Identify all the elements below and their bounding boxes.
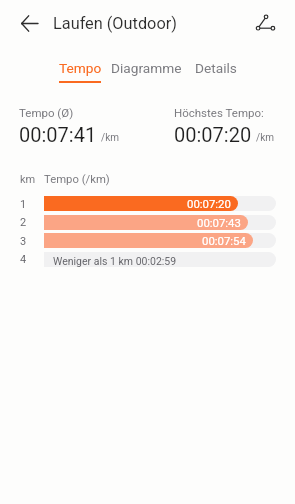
button[interactable]: 00:07:20 <box>44 196 276 211</box>
staticText: km <box>20 173 36 186</box>
button[interactable]: Back <box>16 10 42 36</box>
staticText: /km <box>101 132 119 144</box>
staticText: 4 <box>20 253 27 266</box>
staticText: Weniger als 1 km 00:02:59 <box>53 255 177 267</box>
staticText: 00:07:20 <box>187 197 231 210</box>
staticText: Tempo (Ø) <box>19 106 74 119</box>
staticText: /km <box>256 132 274 144</box>
button[interactable]: Details <box>188 53 244 83</box>
staticText: 00:07:20 <box>174 123 252 146</box>
staticText: 1 <box>20 198 27 211</box>
button[interactable]: Diagramme <box>104 53 189 83</box>
staticText: 00:07:41 <box>19 123 97 146</box>
staticText: Tempo (/km) <box>44 173 110 186</box>
staticText: Laufen (Outdoor) <box>53 14 177 33</box>
button[interactable]: Share <box>252 9 279 36</box>
button[interactable]: 00:07:43 <box>44 215 276 230</box>
staticText: 3 <box>20 235 27 248</box>
button[interactable]: Tempo <box>52 53 109 83</box>
staticText: Diagramme <box>111 60 182 76</box>
staticText: Tempo <box>59 60 102 76</box>
button[interactable]: Weniger als 1 km 00:02:59 <box>44 252 276 267</box>
staticText: 00:07:54 <box>202 234 246 247</box>
staticText: 00:07:43 <box>197 216 241 229</box>
staticText: Höchstes Tempo: <box>174 106 264 119</box>
staticText: 2 <box>20 216 27 229</box>
staticText: Details <box>195 60 237 76</box>
button[interactable]: 00:07:54 <box>44 233 276 248</box>
